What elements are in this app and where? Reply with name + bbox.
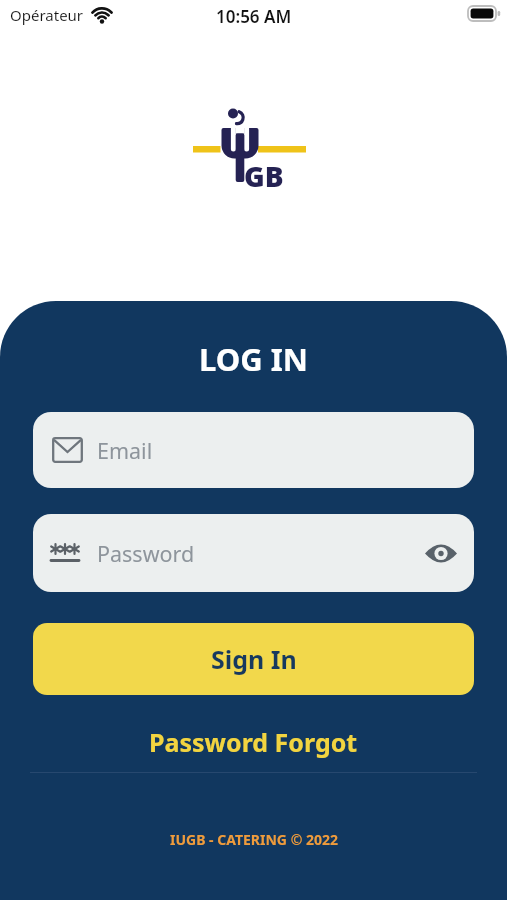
button[interactable]: Password Forgot (0, 721, 507, 763)
staticText: Email (97, 436, 153, 465)
button[interactable] (424, 541, 458, 566)
button[interactable]: Email (33, 412, 474, 488)
button[interactable]: Password (33, 514, 474, 592)
staticText: Sign In (211, 642, 297, 676)
staticText: LOG IN (199, 338, 308, 380)
staticText: GB (244, 157, 284, 195)
staticText: Password (97, 539, 195, 568)
staticText: IUGB - CATERING © 2022 (170, 830, 338, 849)
staticText: Opérateur (10, 5, 84, 25)
button[interactable]: Sign In (33, 623, 474, 695)
staticText: Password Forgot (149, 725, 358, 759)
staticText: 10:56 AM (216, 5, 292, 25)
